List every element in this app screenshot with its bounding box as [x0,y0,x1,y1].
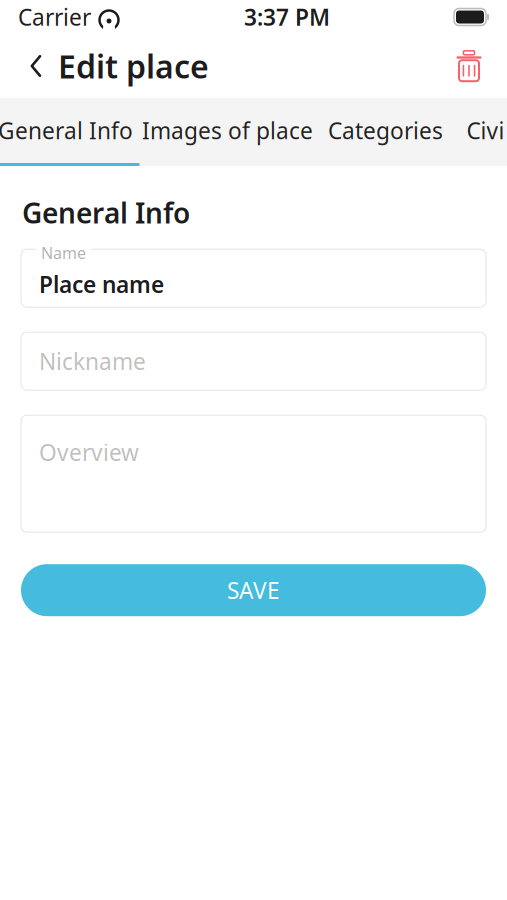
staticText: Nickname [39,346,146,376]
staticText: General Info [22,194,190,231]
button[interactable]: Civi [455,98,507,163]
button[interactable]: SAVE [21,564,486,616]
button[interactable]: Back [14,43,58,89]
staticText: Images of place [142,115,313,145]
staticText: 3:37 PM [244,2,330,32]
button[interactable]: General Info [0,98,139,163]
button[interactable]: Categories [315,98,455,163]
button[interactable]: Images of place [139,98,315,163]
button[interactable]: Delete place [445,43,493,89]
staticText: SAVE [227,575,280,605]
staticText: Categories [328,115,443,145]
staticText: Name [41,242,86,263]
staticText: Place name [39,269,164,299]
staticText: Edit place [58,45,209,87]
staticText: General Info [0,115,133,145]
staticText: Carrier [18,2,91,32]
staticText: Civi [466,115,504,145]
staticText: Overview [39,437,139,467]
